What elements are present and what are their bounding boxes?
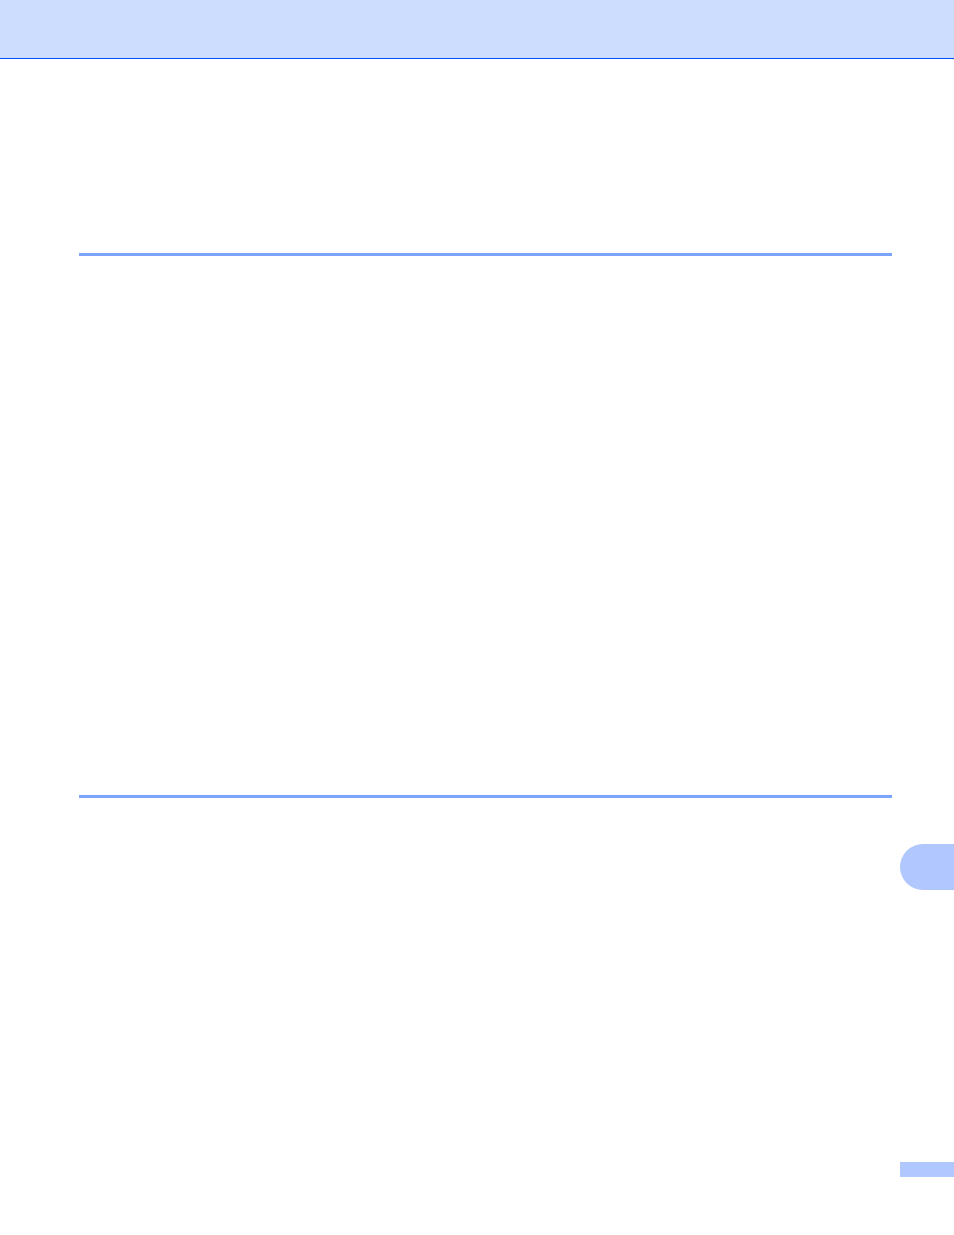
button[interactable]: Open side panel xyxy=(900,844,954,890)
